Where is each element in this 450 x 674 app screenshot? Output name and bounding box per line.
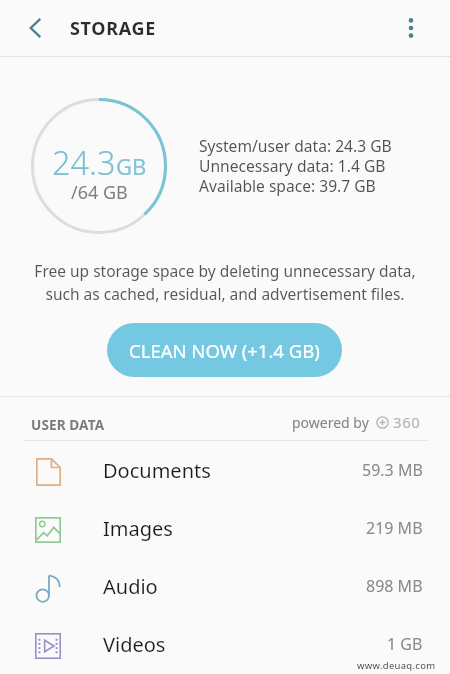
staticText: System/user data: 24.3 GB <box>199 135 392 156</box>
staticText: USER DATA <box>31 415 105 434</box>
staticText: Documents <box>103 457 211 484</box>
staticText: GB <box>116 151 147 181</box>
button[interactable]: Back <box>16 8 56 48</box>
button[interactable]: CLEAN NOW (+1.4 GB) <box>107 323 342 377</box>
staticText: 24.3 <box>52 140 116 184</box>
staticText: Images <box>103 515 173 542</box>
staticText: STORAGE <box>70 16 157 41</box>
button[interactable]: More options <box>396 13 426 43</box>
staticText: Audio <box>103 573 158 600</box>
staticText: 219 MB <box>366 517 423 539</box>
staticText: 898 MB <box>366 575 423 597</box>
staticText: 1 GB <box>387 633 423 655</box>
button[interactable]: Videos <box>0 615 450 673</box>
staticText: Videos <box>103 631 166 658</box>
button[interactable]: Images <box>0 499 450 557</box>
staticText: 59.3 MB <box>362 459 423 481</box>
button[interactable]: Documents <box>0 441 450 499</box>
staticText: /64 GB <box>71 180 128 205</box>
button[interactable]: Audio <box>0 557 450 615</box>
staticText: CLEAN NOW (+1.4 GB) <box>129 338 320 363</box>
staticText: 360 <box>393 412 421 432</box>
staticText: Unnecessary data: 1.4 GB <box>199 155 386 176</box>
staticText: Free up storage space by deleting unnece… <box>0 260 450 305</box>
staticText: www.deuaq.com <box>357 659 436 672</box>
staticText: Available space: 39.7 GB <box>199 175 376 196</box>
staticText: powered by <box>292 413 369 432</box>
